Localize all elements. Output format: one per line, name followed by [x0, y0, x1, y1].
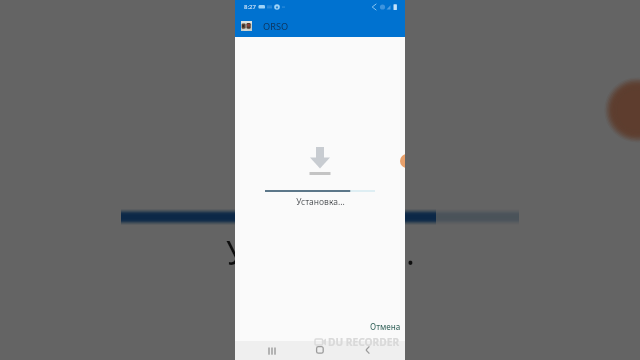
staticText: Установка...	[226, 230, 415, 275]
button[interactable]: Back	[348, 340, 388, 359]
button[interactable]: Home	[300, 340, 340, 359]
staticText: DU RECORDER	[328, 335, 400, 349]
staticText: ORSO	[263, 20, 289, 33]
button[interactable]: Recent apps	[250, 341, 294, 360]
staticText: Установка...	[296, 196, 345, 208]
staticText: Отмена	[370, 321, 401, 332]
staticText: 8:27	[244, 3, 256, 11]
button[interactable]: Отмена	[367, 318, 404, 335]
